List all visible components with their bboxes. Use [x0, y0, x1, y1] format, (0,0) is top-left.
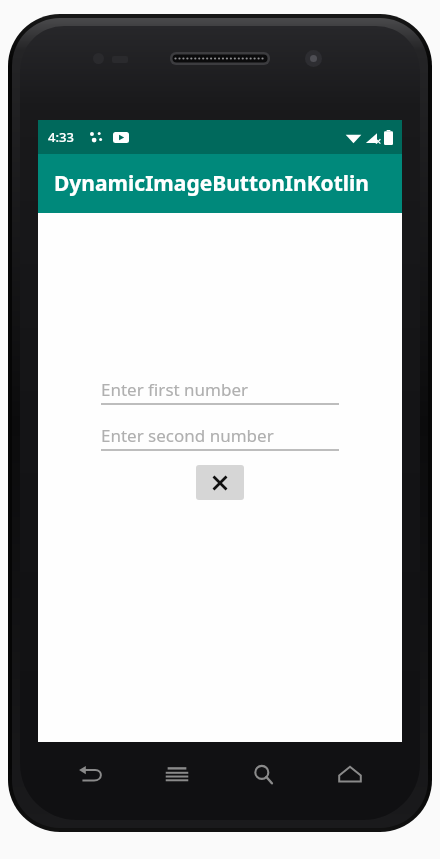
button[interactable]: Enter second number: [101, 422, 339, 451]
button[interactable]: Search: [244, 755, 282, 793]
staticText: 4:33: [48, 128, 74, 146]
staticText: DynamicImageButtonInKotlin: [54, 169, 370, 198]
button[interactable]: Menu: [158, 755, 196, 793]
button[interactable]: Home: [331, 755, 369, 793]
button[interactable]: Back: [72, 755, 110, 793]
staticText: Enter second number: [101, 424, 274, 447]
button[interactable]: Enter first number: [101, 376, 339, 405]
button[interactable]: Clear: [196, 465, 244, 500]
staticText: Enter first number: [101, 378, 249, 401]
